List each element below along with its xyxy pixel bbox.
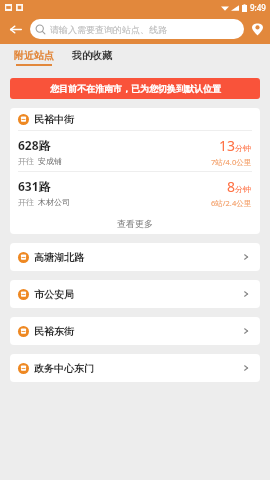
staticText: 木材公司 — [38, 197, 70, 207]
button[interactable]: Back — [0, 14, 30, 44]
staticText: 13分钟 — [219, 136, 252, 155]
staticText: 民裕中街 — [34, 113, 74, 126]
button[interactable]: 附近站点 — [12, 49, 56, 66]
button[interactable]: 民裕东街 — [10, 317, 260, 345]
staticText: 高塘湖北路 — [34, 251, 84, 264]
staticText: 请输入需要查询的站点、线路 — [50, 24, 167, 35]
button[interactable]: 政务中心东门 — [10, 354, 260, 382]
button[interactable]: 我的收藏 — [70, 49, 114, 66]
button[interactable]: Location — [244, 14, 270, 44]
button[interactable]: 高塘湖北路 — [10, 243, 260, 271]
staticText: 628路 — [18, 137, 51, 153]
staticText: 政务中心东门 — [34, 362, 94, 375]
button[interactable]: 628路 — [10, 131, 260, 171]
staticText: 安成铺 — [38, 156, 62, 166]
staticText: 8分钟 — [227, 177, 252, 196]
staticText: 您目前不在淮南市，已为您切换到默认位置 — [50, 83, 221, 94]
staticText: 民裕东街 — [34, 325, 74, 338]
button[interactable]: 请输入需要查询的站点、线路 — [30, 19, 244, 39]
staticText: 我的收藏 — [72, 49, 112, 62]
staticText: 开往 — [18, 197, 34, 207]
button[interactable]: 您目前不在淮南市，已为您切换到默认位置 — [10, 78, 260, 99]
staticText: 7站/4.0公里 — [211, 157, 252, 167]
staticText: 附近站点 — [14, 49, 54, 62]
button[interactable]: 631路 — [10, 172, 260, 212]
staticText: 9:49 — [250, 2, 266, 13]
staticText: 631路 — [18, 178, 51, 194]
button[interactable]: 民裕中街 — [10, 108, 260, 130]
staticText: 开往 — [18, 156, 34, 166]
button[interactable]: 市公安局 — [10, 280, 260, 308]
staticText: 市公安局 — [34, 288, 74, 301]
staticText: 查看更多 — [117, 218, 153, 229]
button[interactable]: 查看更多 — [10, 212, 260, 234]
staticText: 6站/2.4公里 — [211, 198, 252, 208]
